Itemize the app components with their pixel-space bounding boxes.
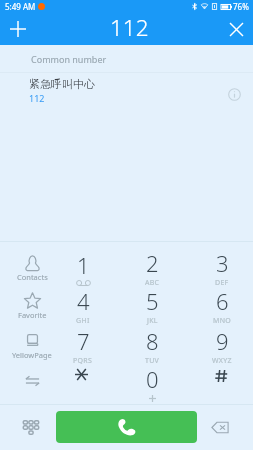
staticText: YellowPage xyxy=(12,350,52,360)
staticText: DEF xyxy=(215,278,229,288)
button[interactable] xyxy=(187,356,253,397)
button[interactable] xyxy=(48,356,118,397)
button[interactable]: Favorite xyxy=(0,279,48,320)
staticText: 8 xyxy=(146,326,159,356)
staticText: Favorite xyxy=(18,310,47,320)
button[interactable]: 紧急呼叫中心 xyxy=(0,73,253,107)
button[interactable] xyxy=(0,356,48,397)
button[interactable]: 9 xyxy=(187,319,253,360)
staticText: 2 xyxy=(146,248,159,278)
staticText: JKL xyxy=(147,316,158,326)
staticText: MNO xyxy=(213,316,232,326)
staticText: PQRS xyxy=(73,356,93,366)
button[interactable]: 5 xyxy=(117,279,187,320)
button[interactable]: Contacts xyxy=(0,241,48,282)
button[interactable]: 7 xyxy=(48,319,118,360)
button[interactable]: Details xyxy=(221,81,247,107)
staticText: Contacts xyxy=(17,272,48,282)
button[interactable]: 1 xyxy=(48,241,118,282)
button[interactable]: 0 xyxy=(117,356,187,397)
staticText: 7 xyxy=(77,326,90,356)
button[interactable]: Close xyxy=(221,13,253,45)
staticText: 5 xyxy=(146,286,159,316)
staticText: 4 xyxy=(77,286,90,316)
button[interactable]: Call xyxy=(56,411,197,443)
staticText: 5:49 AM xyxy=(5,1,36,12)
staticText: 112 xyxy=(29,92,45,104)
button[interactable]: Delete xyxy=(197,405,253,450)
button[interactable]: Keypad xyxy=(0,405,56,450)
button[interactable]: 6 xyxy=(187,279,253,320)
staticText: WXYZ xyxy=(212,356,232,366)
staticText: 0 xyxy=(146,364,159,394)
staticText: Common number xyxy=(31,53,107,65)
button[interactable]: 4 xyxy=(48,279,118,320)
staticText: 3 xyxy=(216,248,229,278)
button[interactable]: 2 xyxy=(117,241,187,282)
staticText: ABC xyxy=(145,278,160,288)
staticText: TUV xyxy=(145,356,160,366)
staticText: 紧急呼叫中心 xyxy=(29,77,95,91)
button[interactable]: YellowPage xyxy=(0,319,48,360)
staticText: GHI xyxy=(76,316,90,326)
staticText: 112 xyxy=(110,12,149,43)
staticText: 9 xyxy=(216,326,229,356)
button[interactable]: Add contact xyxy=(0,13,32,45)
staticText: 1 xyxy=(77,250,90,280)
staticText: 76% xyxy=(233,1,249,12)
staticText: 6 xyxy=(216,286,229,316)
button[interactable]: 3 xyxy=(187,241,253,282)
button[interactable]: 8 xyxy=(117,319,187,360)
